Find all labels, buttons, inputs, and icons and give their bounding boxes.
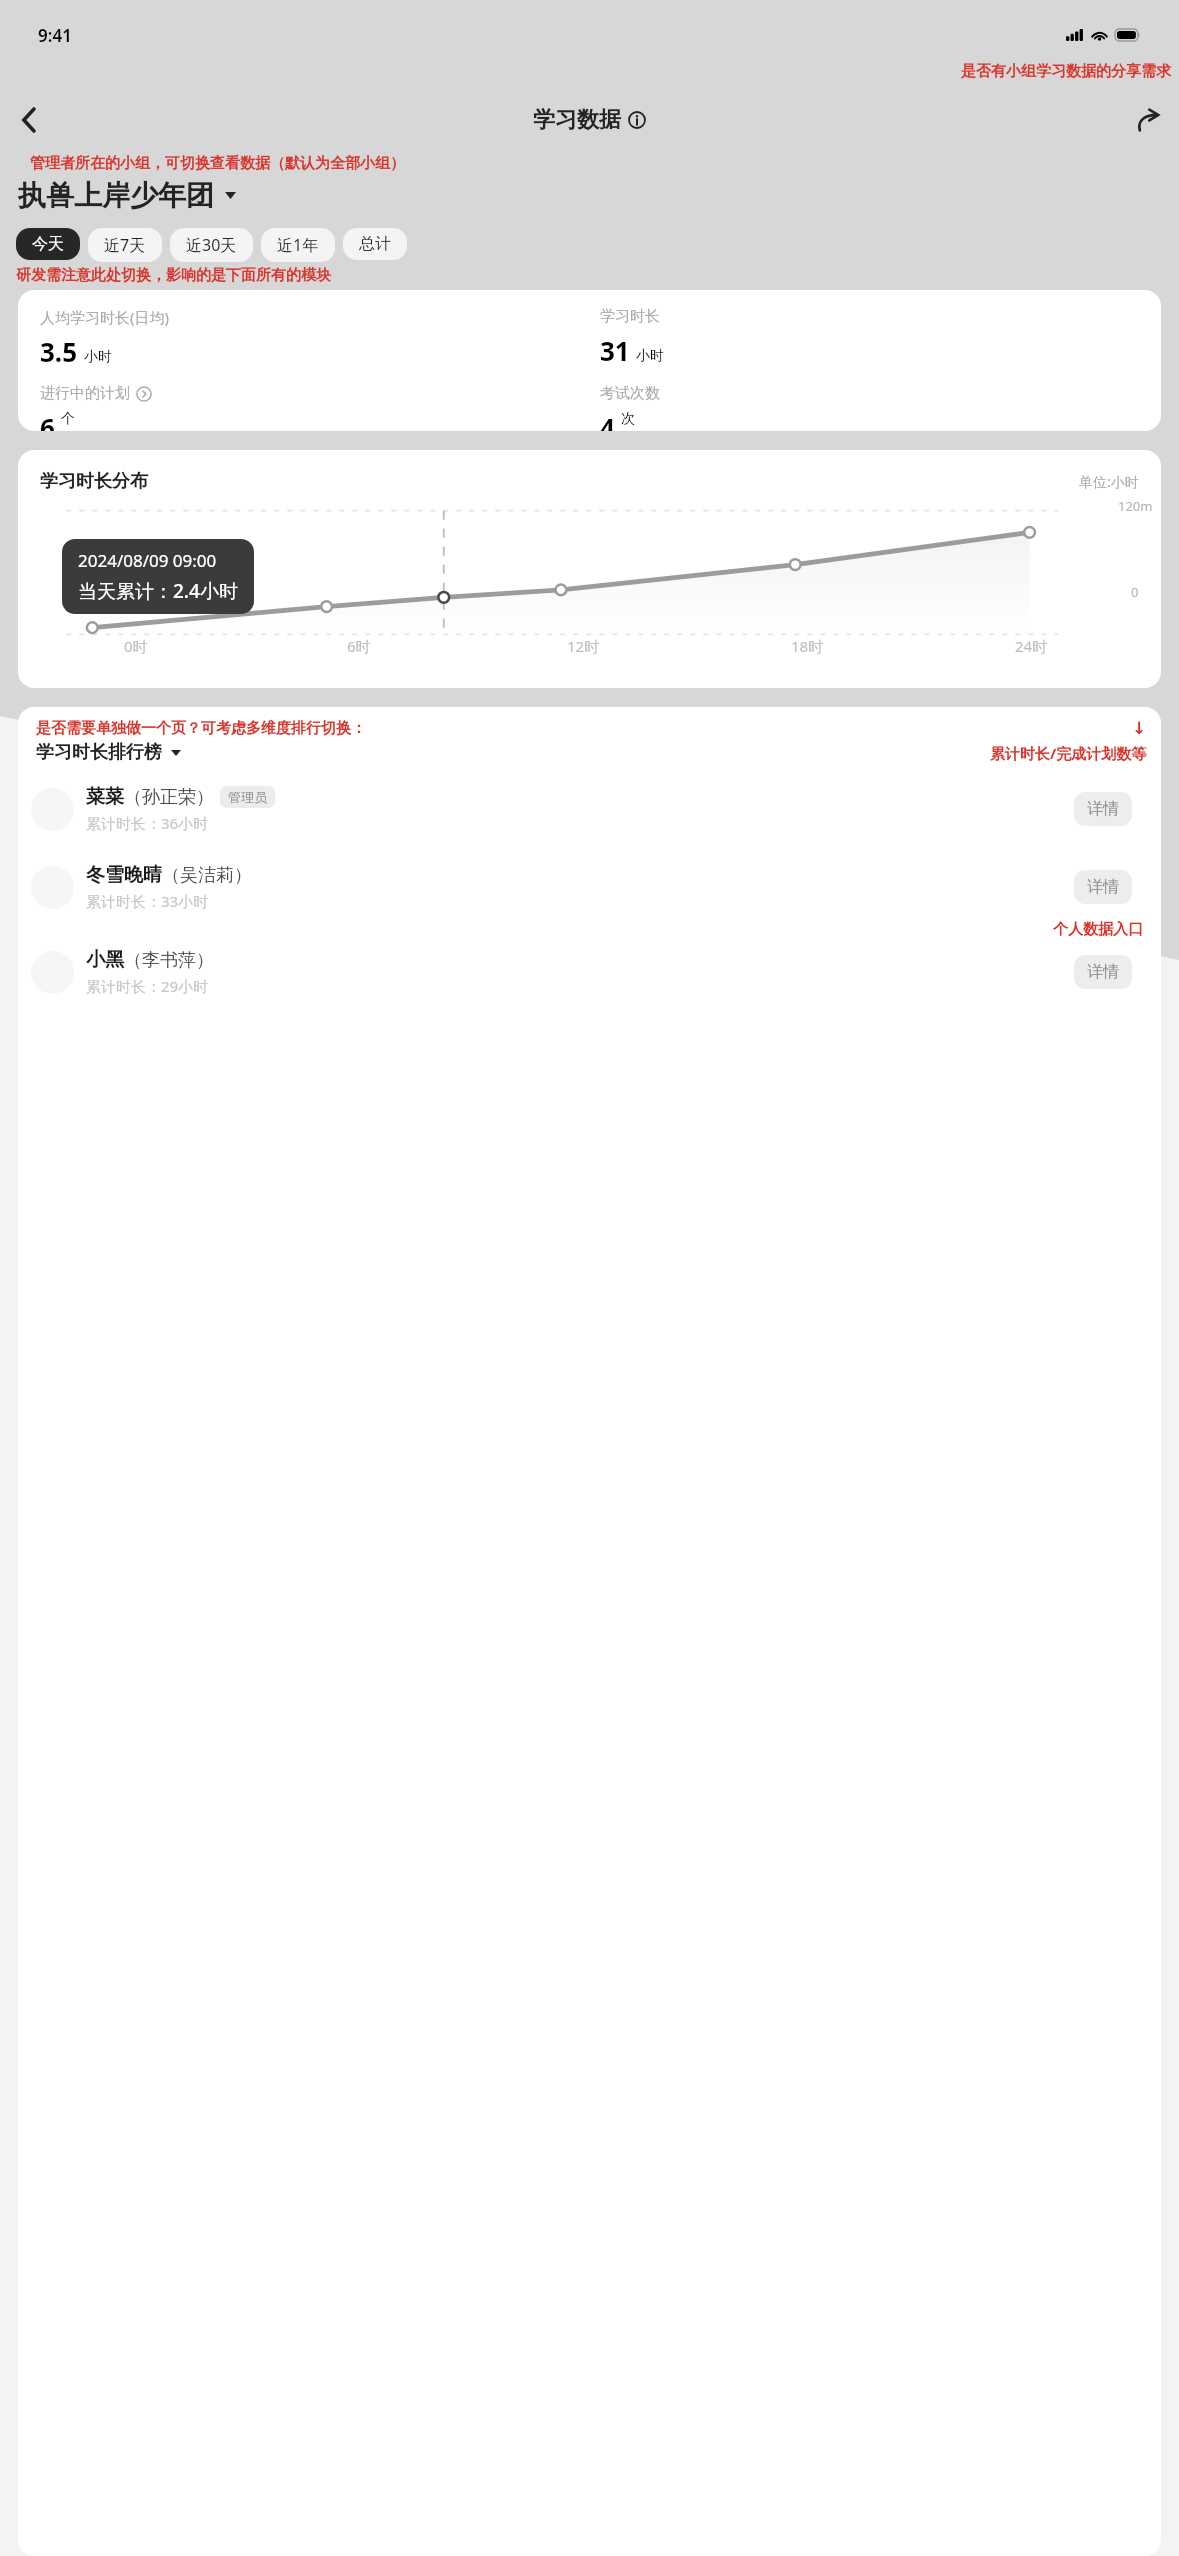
staticText: 详情 (1087, 799, 1119, 819)
staticText: 管理员 (228, 789, 267, 805)
staticText: 菜菜 (86, 785, 124, 809)
staticText: 24时 (1015, 636, 1048, 656)
staticText: 近7天 (104, 234, 146, 256)
staticText: 6 (40, 410, 55, 431)
button[interactable]: 近7天 (88, 228, 162, 262)
staticText: 研发需注意此处切换，影响的是下面所有的模块 (16, 266, 331, 285)
button[interactable]: 菜菜 (18, 780, 1161, 838)
staticText: 6时 (347, 636, 371, 656)
staticText: 0时 (124, 636, 148, 656)
button[interactable]: 进行中的计划 (40, 384, 152, 403)
staticText: 考试次数 (600, 384, 660, 403)
staticText: 31 (600, 333, 630, 368)
staticText: 管理者所在的小组，可切换查看数据（默认为全部小组） (30, 154, 405, 173)
staticText: （孙正荣） (124, 786, 214, 809)
staticText: 累计时长/完成计划数等 (990, 743, 1147, 763)
button[interactable]: 详情 (1074, 792, 1132, 826)
staticText: 小黑 (86, 948, 124, 972)
staticText: 详情 (1087, 962, 1119, 982)
staticText: 4 (600, 410, 615, 431)
staticText: 人均学习时长(日均) (40, 307, 170, 327)
staticText: 小时 (84, 348, 112, 366)
button[interactable]: 分享 (1125, 97, 1171, 143)
staticText: 2024/08/09 09:00 (78, 549, 217, 572)
staticText: 冬雪晚晴 (86, 863, 162, 887)
staticText: 今天 (32, 234, 64, 254)
button[interactable]: 冬雪晚晴 (18, 858, 1161, 916)
staticText: ↓ (1132, 718, 1147, 738)
staticText: 个人数据入口 (1053, 920, 1143, 939)
staticText: 单位:小时 (1079, 472, 1139, 491)
button[interactable]: 详情 (1074, 870, 1132, 904)
staticText: 3.5 (40, 334, 78, 369)
staticText: 累计时长：33小时 (86, 891, 209, 911)
staticText: 小时 (636, 347, 664, 365)
staticText: 近1年 (277, 234, 319, 256)
staticText: 个 (61, 410, 75, 428)
staticText: （吴洁莉） (162, 864, 252, 887)
staticText: 次 (621, 410, 635, 428)
staticText: 学习时长分布 (40, 470, 148, 493)
button[interactable]: 学习数据 (533, 106, 646, 134)
button[interactable]: 总计 (343, 228, 407, 260)
staticText: 进行中的计划 (40, 384, 130, 403)
staticText: 执兽上岸少年团 (18, 178, 214, 213)
staticText: 总计 (359, 234, 391, 254)
button[interactable]: 今天 (16, 228, 80, 260)
button[interactable]: 返回 (4, 96, 52, 144)
button[interactable]: 近30天 (170, 228, 253, 262)
staticText: 18时 (791, 636, 824, 656)
button[interactable]: 小黑 (18, 943, 1161, 1001)
staticText: 12时 (567, 636, 600, 656)
staticText: 9:41 (38, 24, 72, 47)
staticText: 累计时长：29小时 (86, 976, 209, 996)
staticText: 是否需要单独做一个页？可考虑多维度排行切换： (36, 719, 366, 738)
staticText: 当天累计：2.4小时 (78, 578, 238, 604)
staticText: 0 (1131, 583, 1139, 601)
staticText: 学习时长排行榜 (36, 741, 162, 764)
staticText: 120m (1118, 497, 1153, 515)
staticText: 详情 (1087, 877, 1119, 897)
button[interactable]: 详情 (1074, 955, 1132, 989)
staticText: 近30天 (186, 234, 237, 256)
button[interactable]: 近1年 (261, 228, 335, 262)
button[interactable]: 执兽上岸少年团 (18, 178, 236, 213)
staticText: 是否有小组学习数据的分享需求 (961, 62, 1171, 81)
staticText: 学习数据 (533, 106, 621, 134)
staticText: 学习时长 (600, 307, 660, 326)
button[interactable]: 学习时长排行榜 (36, 741, 181, 764)
staticText: （李书萍） (124, 949, 214, 972)
staticText: 累计时长：36小时 (86, 813, 209, 833)
